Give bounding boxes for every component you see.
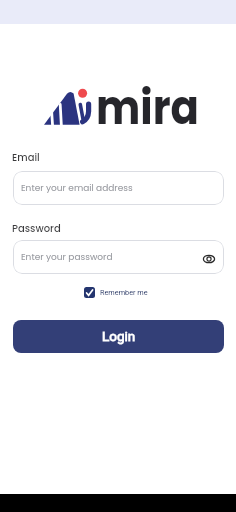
button[interactable] bbox=[202, 254, 216, 264]
staticText: Email bbox=[12, 150, 40, 164]
staticText: Remember me bbox=[100, 288, 148, 297]
button[interactable]: Enter your password bbox=[13, 240, 224, 274]
staticText: Login bbox=[102, 328, 136, 344]
staticText: Enter your password bbox=[21, 251, 113, 264]
staticText: Enter your email address bbox=[21, 182, 133, 195]
staticText: mira bbox=[96, 75, 199, 141]
button[interactable]: Remember me bbox=[84, 287, 148, 298]
button[interactable]: Login bbox=[13, 320, 224, 353]
staticText: Password bbox=[12, 221, 61, 235]
button[interactable]: Enter your email address bbox=[13, 171, 224, 205]
